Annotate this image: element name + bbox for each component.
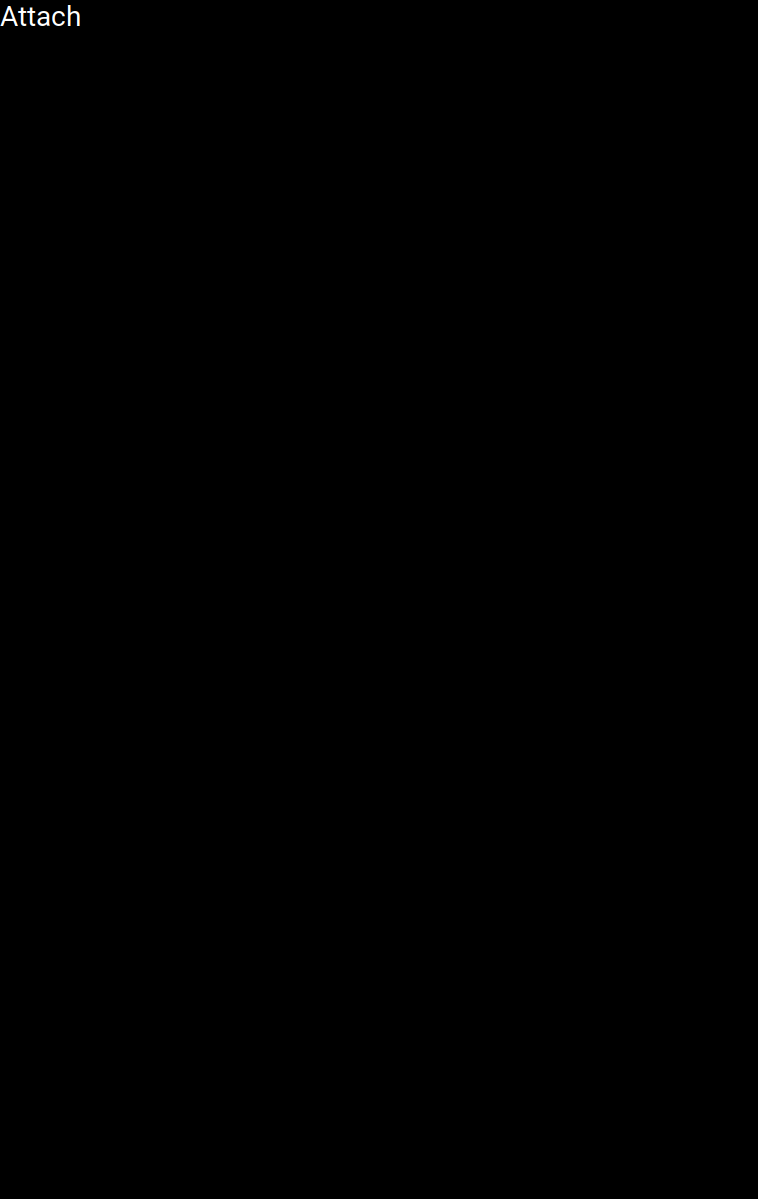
staticText: Attach xyxy=(0,0,81,33)
